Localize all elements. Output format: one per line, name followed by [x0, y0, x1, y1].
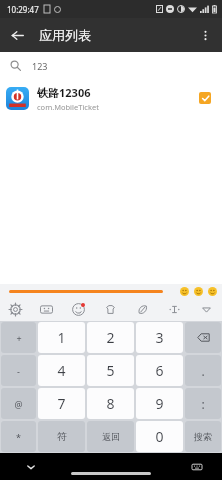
staticText: 铁路12306 — [37, 85, 91, 100]
button[interactable]: Emoji suggestion 2 — [194, 287, 203, 296]
staticText: . — [201, 363, 205, 379]
button[interactable]: 1 — [38, 322, 85, 353]
button[interactable]: 123 — [0, 52, 222, 79]
staticText: 1 — [57, 328, 66, 347]
button[interactable]: 6 — [136, 355, 183, 386]
staticText: 2 — [106, 328, 115, 347]
button[interactable]: 符 — [38, 421, 85, 452]
button[interactable]: Hide keyboard — [22, 458, 40, 476]
button[interactable]: App selected — [190, 83, 220, 113]
button[interactable]: Switch input method — [188, 458, 206, 476]
staticText: 5 — [106, 361, 115, 380]
staticText: 0 — [155, 427, 164, 446]
staticText: 7 — [57, 394, 66, 413]
button[interactable]: 9 — [136, 388, 183, 419]
staticText: 应用列表 — [39, 27, 91, 43]
button[interactable]: Settings — [0, 298, 31, 321]
button[interactable]: Handwriting — [126, 298, 158, 321]
staticText: 符 — [57, 430, 67, 443]
staticText: 返回 — [102, 431, 120, 442]
button[interactable]: Keyboard — [31, 298, 62, 321]
button[interactable]: Back — [0, 18, 34, 52]
button[interactable]: 铁路12306 — [0, 79, 222, 117]
staticText: 6 — [155, 361, 164, 380]
button[interactable]: 4 — [38, 355, 85, 386]
button[interactable]: Emoji suggestion 1 — [180, 287, 189, 296]
button[interactable]: Theme — [94, 298, 126, 321]
button[interactable]: Emoji suggestion 3 — [208, 287, 217, 296]
button[interactable]: 7 — [38, 388, 85, 419]
staticText: 搜索 — [194, 431, 212, 442]
button[interactable]: . — [185, 355, 221, 386]
button[interactable]: : — [185, 388, 221, 419]
button[interactable]: * — [1, 421, 36, 452]
button[interactable]: - — [1, 355, 36, 386]
button[interactable]: 3 — [136, 322, 183, 353]
button[interactable]: 5 — [87, 355, 134, 386]
button[interactable]: 搜索 — [185, 421, 221, 452]
button[interactable]: 0 — [136, 421, 183, 452]
staticText: 3 — [155, 328, 164, 347]
staticText: @ — [14, 398, 23, 410]
button[interactable]: 返回 — [87, 421, 134, 452]
staticText: + — [16, 332, 22, 344]
button[interactable]: Text editing — [158, 298, 190, 321]
button[interactable]: 2 — [87, 322, 134, 353]
button[interactable]: + — [1, 322, 36, 353]
button[interactable]: Backspace — [185, 322, 221, 353]
staticText: 8 — [106, 394, 115, 413]
staticText: - — [17, 365, 20, 377]
staticText: 10:29:47 — [7, 4, 39, 15]
staticText: 4 — [57, 361, 66, 380]
staticText: 9 — [155, 394, 164, 413]
staticText: com.MobileTicket — [37, 102, 99, 112]
button[interactable]: Emoji — [62, 298, 94, 321]
staticText: * — [16, 431, 21, 443]
button[interactable]: More options — [188, 18, 222, 52]
button[interactable]: 8 — [87, 388, 134, 419]
staticText: : — [201, 396, 205, 412]
staticText: 123 — [32, 60, 48, 72]
button[interactable]: Collapse — [190, 298, 222, 321]
button[interactable]: @ — [1, 388, 36, 419]
